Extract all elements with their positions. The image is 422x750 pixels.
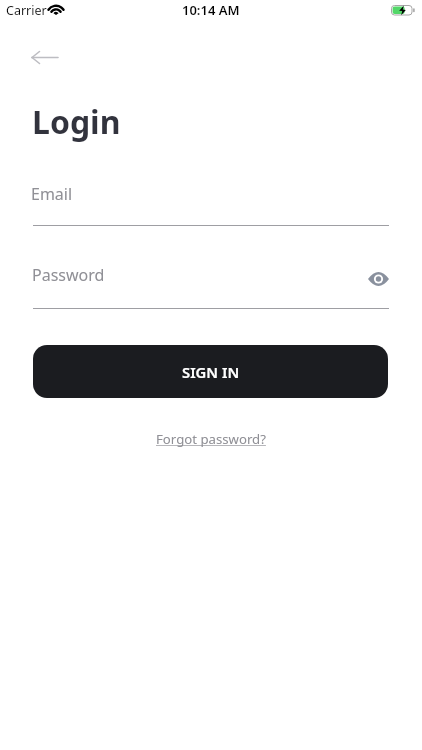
button[interactable]: Forgot password? xyxy=(156,430,266,448)
button[interactable] xyxy=(358,264,398,294)
staticText: Email xyxy=(31,183,73,205)
staticText: 10:14 AM xyxy=(182,1,240,19)
staticText: Password xyxy=(32,264,105,286)
staticText: Login xyxy=(32,100,121,144)
staticText: Carrier xyxy=(6,2,47,19)
button[interactable]: SIGN IN xyxy=(33,345,388,398)
button[interactable]: Email xyxy=(31,180,389,227)
staticText: SIGN IN xyxy=(182,362,240,382)
button[interactable] xyxy=(24,44,64,70)
button[interactable]: Password xyxy=(31,262,389,309)
